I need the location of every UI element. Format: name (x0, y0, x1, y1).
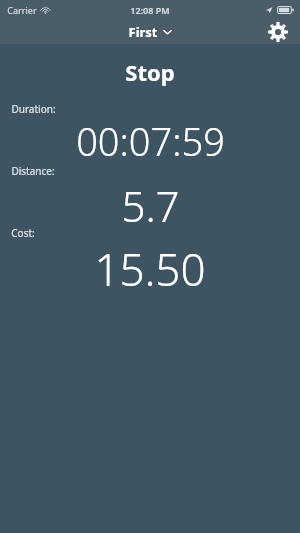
staticText: Duration: (11, 102, 56, 116)
staticText: Stop (125, 57, 175, 87)
staticText: Cost: (11, 226, 35, 240)
staticText: 00:07:59 (76, 115, 225, 167)
staticText: 15.50 (94, 239, 206, 299)
staticText: 12:08 PM (130, 4, 170, 16)
staticText: First (128, 23, 158, 41)
button[interactable]: Stop (0, 56, 300, 88)
button[interactable]: First (122, 21, 178, 43)
staticText: Distance: (11, 164, 55, 178)
staticText: Carrier (7, 4, 37, 16)
staticText: 5.7 (121, 177, 180, 234)
button[interactable]: Settings (262, 19, 294, 44)
